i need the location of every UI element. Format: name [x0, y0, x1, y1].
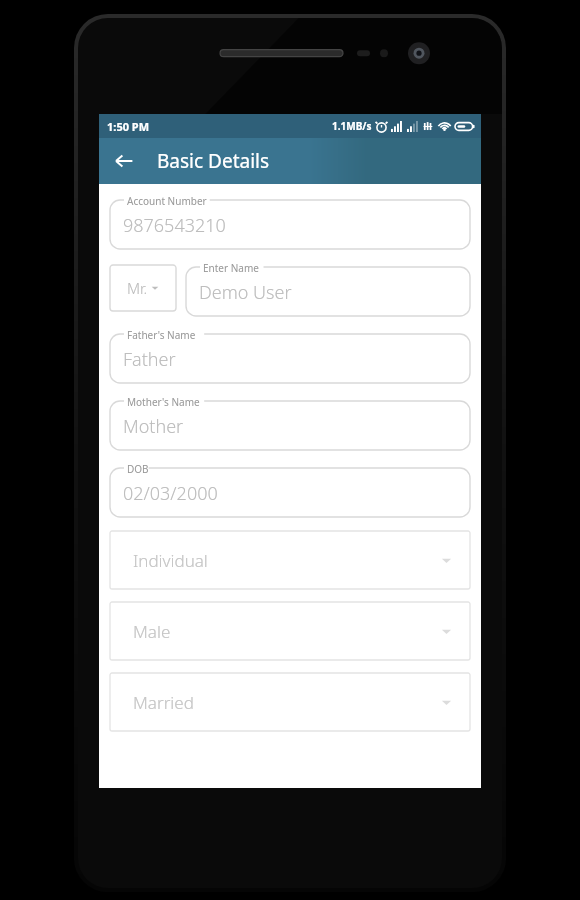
button[interactable]: Enter Name	[186, 260, 470, 316]
staticText: 02/03/2000	[123, 481, 218, 506]
button[interactable]: Mother's Name	[110, 394, 470, 450]
staticText: 1.1MB/s	[332, 119, 372, 133]
staticText: Father	[123, 347, 176, 372]
button[interactable]: Account Number	[110, 193, 470, 249]
staticText: DOB	[127, 462, 149, 476]
staticText: Basic Details	[157, 148, 270, 174]
staticText: Mother	[123, 414, 184, 439]
staticText: Demo User	[199, 280, 292, 305]
staticText: Father's Name	[127, 328, 196, 342]
staticText: Mr.	[127, 278, 148, 298]
button[interactable]: Individual	[110, 531, 470, 589]
button[interactable]: DOB	[110, 461, 470, 517]
staticText: Individual	[133, 549, 208, 572]
button[interactable]: Male	[110, 602, 470, 660]
staticText: Married	[133, 691, 194, 714]
staticText: 9876543210	[123, 213, 226, 238]
staticText: Male	[133, 620, 171, 643]
staticText: Enter Name	[203, 261, 259, 275]
button[interactable]: Mr.	[110, 265, 176, 311]
button[interactable]: Back	[105, 142, 143, 180]
staticText: 1:50 PM	[107, 119, 150, 134]
button[interactable]: Married	[110, 673, 470, 731]
staticText: Mother's Name	[127, 395, 200, 409]
button[interactable]: Father's Name	[110, 327, 470, 383]
staticText: Account Number	[127, 194, 207, 208]
